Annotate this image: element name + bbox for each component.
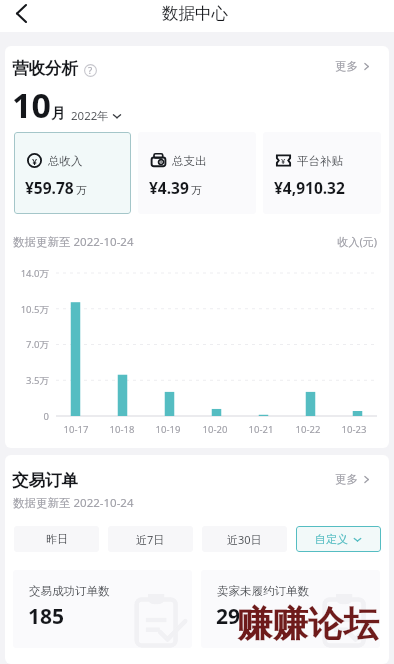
staticText: 月 [51, 104, 66, 122]
staticText: 近30日 [227, 532, 262, 547]
button[interactable]: 自定义 [296, 526, 381, 552]
staticText: 10-21 [241, 423, 281, 436]
staticText: 2022年 [71, 108, 109, 124]
staticText: 数据更新至 2022-10-24 [13, 234, 134, 250]
staticText: 10-23 [334, 423, 374, 436]
button[interactable]: 更多 [335, 59, 371, 73]
staticText: 自定义 [315, 532, 348, 546]
staticText: 总支出 [172, 154, 207, 168]
staticText: 10-19 [148, 423, 188, 436]
button[interactable]: 交易成功订单数 [13, 570, 192, 648]
button[interactable]: 昨日 [14, 526, 99, 552]
staticText: 10-20 [195, 423, 235, 436]
staticText: ¥4,910.32 [274, 177, 345, 198]
staticText: 0 [5, 410, 49, 423]
staticText: 更多 [335, 472, 358, 486]
staticText: 10-18 [102, 423, 142, 436]
staticText: 10.5万 [5, 303, 49, 316]
button[interactable]: 2022年 [71, 108, 122, 124]
staticText: 数据更新至 2022-10-24 [13, 495, 134, 511]
staticText: 185 [28, 602, 65, 631]
staticText: ¥4.39 [149, 177, 189, 198]
staticText: ¥ [32, 155, 38, 167]
button[interactable]: ¥ [14, 132, 131, 214]
staticText: 万 [191, 184, 202, 197]
staticText: 数据中心 [162, 3, 228, 24]
staticText: 万 [76, 184, 87, 197]
staticText: 29 [216, 602, 241, 631]
button[interactable]: 更多 [335, 472, 371, 486]
button[interactable]: 近7日 [108, 526, 193, 552]
staticText: ¥59.78 [25, 177, 74, 198]
staticText: 3.5万 [5, 374, 49, 387]
staticText: 收入(元) [297, 234, 377, 249]
staticText: 7.0万 [5, 338, 49, 351]
button[interactable]: 总支出 [138, 132, 256, 214]
button[interactable]: 卖家未履约订单数 [201, 570, 380, 648]
staticText: 10-17 [56, 423, 96, 436]
staticText: 近7日 [136, 532, 165, 547]
button[interactable]: ¥ [263, 132, 381, 214]
staticText: 平台补贴 [297, 154, 343, 168]
staticText: 14.0万 [5, 267, 49, 280]
staticText: 赚赚论坛 [237, 602, 379, 647]
staticText: 交易订单 [12, 470, 78, 491]
button[interactable]: 近30日 [202, 526, 287, 552]
staticText: 更多 [335, 59, 358, 73]
button[interactable]: Back [0, 0, 42, 31]
staticText: 昨日 [46, 532, 68, 546]
staticText: 10-22 [288, 423, 328, 436]
staticText: 10 [12, 82, 51, 128]
staticText: ? [88, 64, 93, 77]
staticText: 总收入 [48, 154, 83, 168]
staticText: 营收分析 [12, 58, 78, 79]
staticText: 交易成功订单数 [29, 584, 110, 598]
staticText: 卖家未履约订单数 [217, 584, 309, 598]
staticText: ¥ [281, 156, 286, 166]
